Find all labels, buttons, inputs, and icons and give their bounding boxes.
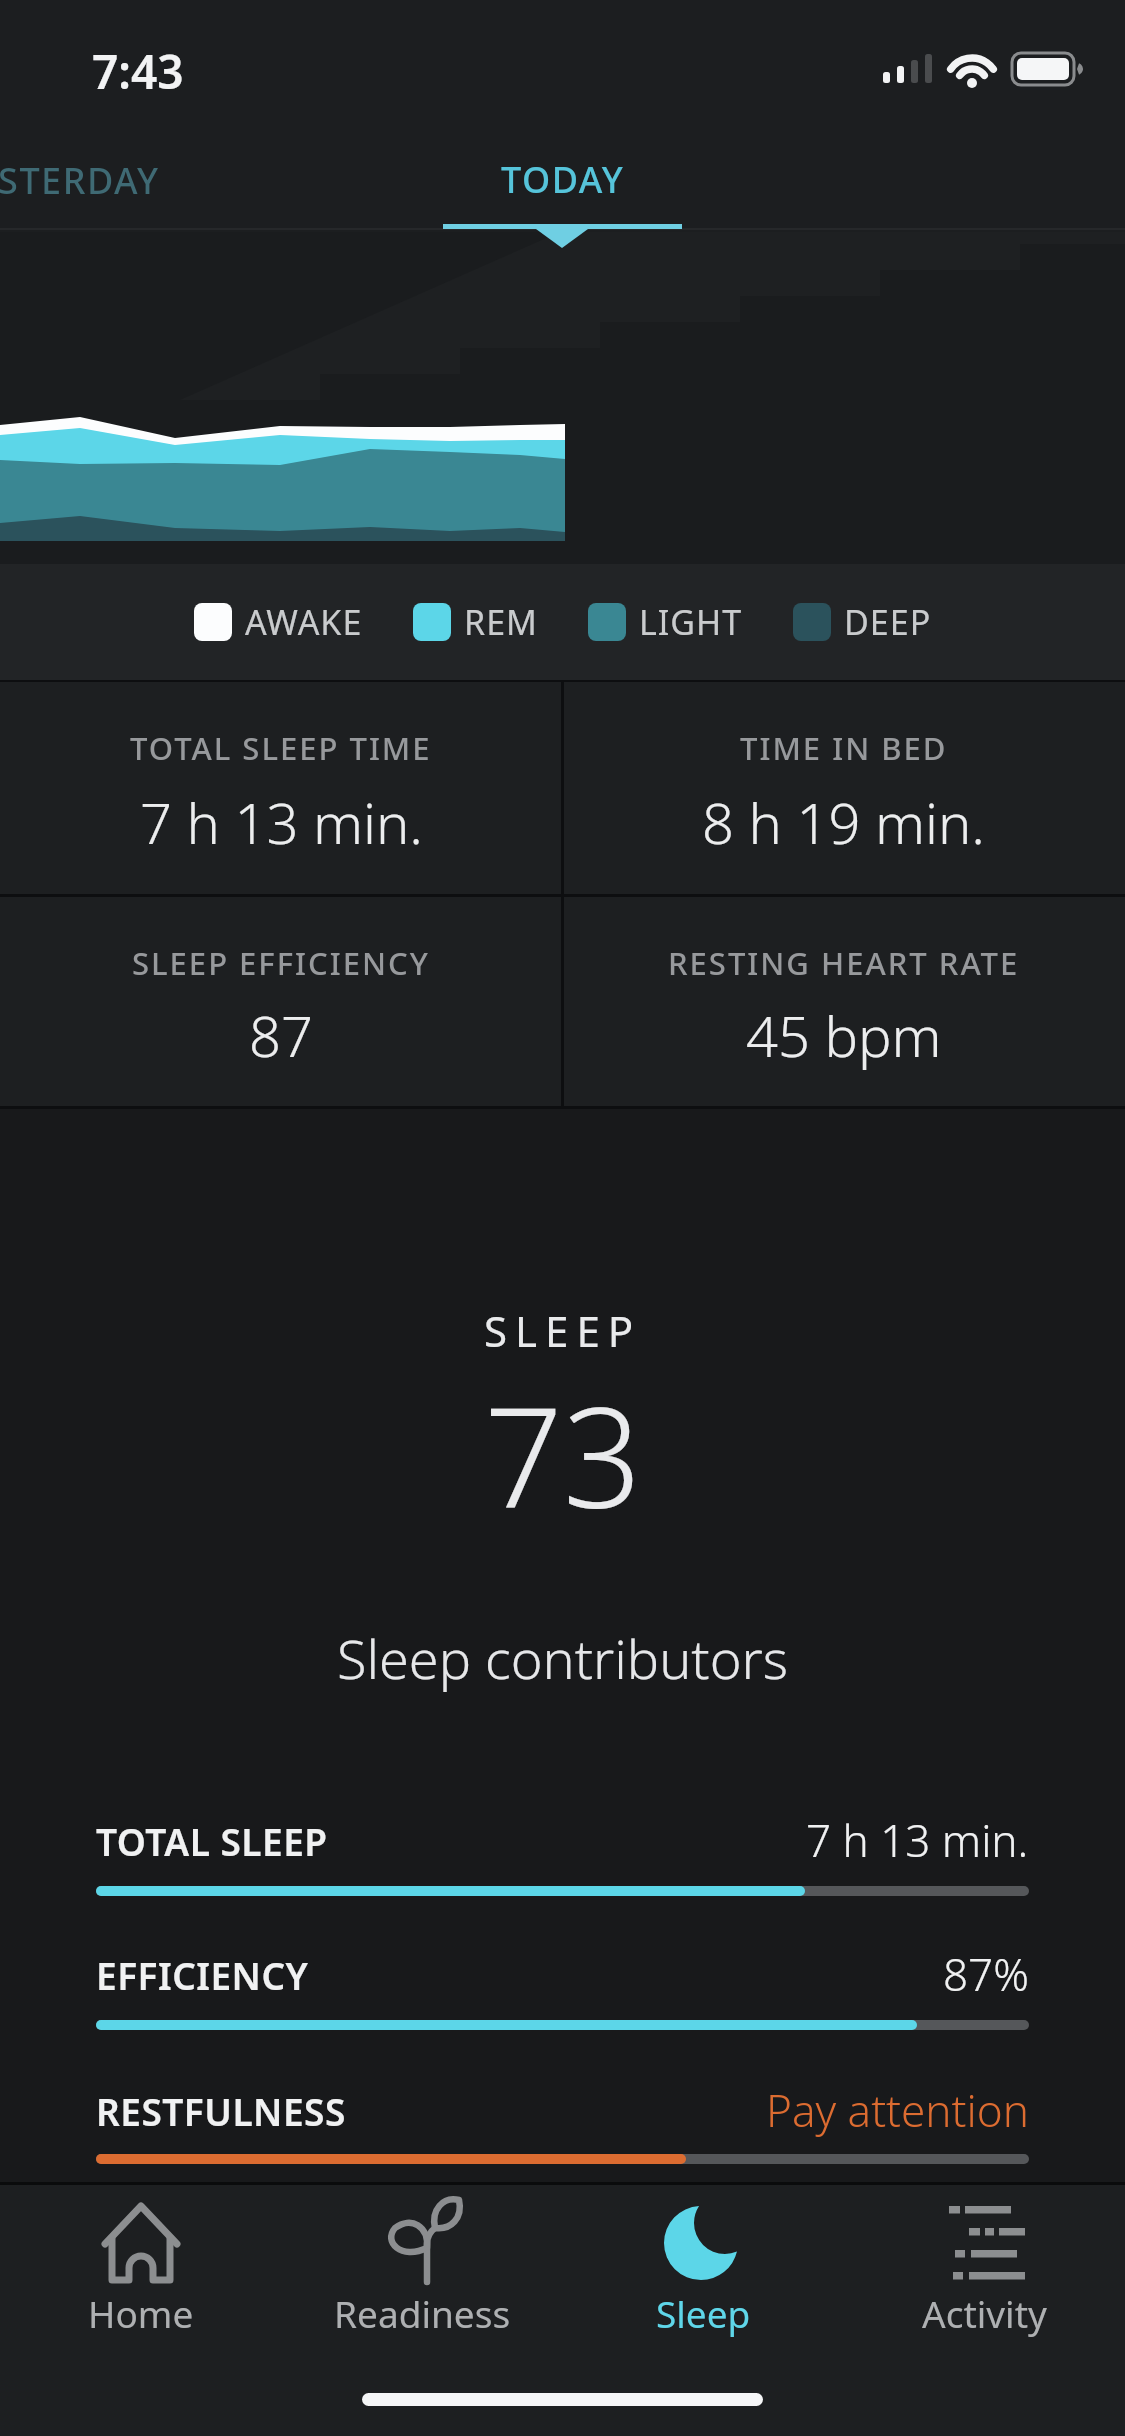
staticText: EFFICIENCY [96, 1950, 309, 2000]
staticText: 7 h 13 min. [806, 1810, 1029, 1868]
staticText: 7 h 13 min. [140, 784, 423, 860]
staticText: 73 [484, 1360, 642, 1530]
staticText: TIME IN BED [740, 727, 948, 769]
staticText: Sleep [656, 2288, 751, 2338]
staticText: 7:43 [92, 40, 184, 96]
button[interactable]: TODAY [443, 148, 682, 210]
button[interactable] [96, 1940, 1029, 2040]
staticText: DEEP [844, 599, 932, 645]
button[interactable]: Home [0, 2196, 282, 2338]
button[interactable] [96, 1806, 1029, 1906]
staticText: 8 h 19 min. [702, 784, 985, 860]
staticText: Home [88, 2288, 194, 2338]
button[interactable]: Readiness [282, 2196, 563, 2338]
staticText: Readiness [334, 2288, 511, 2338]
staticText: LIGHT [639, 599, 743, 645]
staticText: 87% [943, 1944, 1029, 2002]
staticText: AWAKE [245, 599, 363, 645]
button[interactable]: YESTERDAY [0, 150, 172, 210]
button[interactable]: Activity [844, 2196, 1125, 2338]
staticText: 45 bpm [746, 997, 942, 1073]
staticText: Pay attention [766, 2080, 1029, 2138]
staticText: TODAY [501, 155, 625, 204]
staticText: 87 [249, 997, 313, 1073]
staticText: YESTERDAY [0, 156, 160, 205]
staticText: Activity [922, 2288, 1047, 2338]
staticText: REM [464, 599, 538, 645]
button[interactable] [96, 2076, 1029, 2174]
staticText: RESTING HEART RATE [668, 942, 1020, 984]
staticText: SLEEP EFFICIENCY [132, 942, 430, 984]
staticText: Sleep contributors [337, 1621, 789, 1695]
staticText: TOTAL SLEEP TIME [130, 727, 432, 769]
staticText: RESTFULNESS [96, 2086, 346, 2136]
button[interactable]: Sleep [563, 2196, 844, 2338]
staticText: SLEEP [484, 1302, 642, 1358]
staticText: TOTAL SLEEP [96, 1816, 328, 1866]
